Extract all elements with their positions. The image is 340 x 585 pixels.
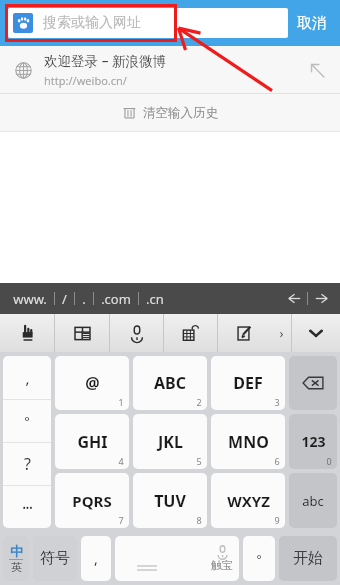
staticText: 5 — [196, 455, 202, 467]
staticText: 9 — [274, 514, 280, 526]
staticText: 搜索或输入网址 — [43, 14, 141, 32]
staticText: 3 — [274, 396, 280, 408]
button[interactable]: www. — [6, 283, 54, 314]
button[interactable]: 符号 — [33, 536, 77, 581]
staticText: ABC — [154, 372, 186, 394]
staticText: MNO — [228, 431, 269, 453]
staticText: http://weibo.cn/ — [44, 73, 127, 88]
button[interactable]: ° — [243, 536, 275, 581]
button[interactable]: Handwriting — [0, 314, 54, 352]
button[interactable]: Next — [308, 283, 334, 314]
button[interactable]: ? — [3, 443, 51, 485]
button[interactable]: JKL — [133, 414, 207, 469]
staticText: ° — [256, 551, 262, 567]
button[interactable]: MNO — [211, 414, 285, 469]
staticText: 4 — [118, 455, 124, 467]
button[interactable]: @ — [55, 356, 129, 410]
staticText: PQRS — [72, 491, 112, 511]
button[interactable]: 搜索或输入网址 — [8, 8, 288, 38]
button[interactable]: Backspace — [289, 356, 337, 410]
staticText: 8 — [196, 514, 202, 526]
staticText: ° — [24, 412, 30, 430]
button[interactable]: GHI — [55, 414, 129, 469]
button[interactable]: abc — [289, 473, 337, 528]
staticText: 中 — [10, 543, 23, 559]
button[interactable]: Voice input — [110, 314, 163, 352]
button[interactable]: WXYZ — [211, 473, 285, 528]
button[interactable]: Previous — [281, 283, 307, 314]
staticText: JKL — [158, 431, 183, 453]
button[interactable]: . — [75, 283, 93, 314]
staticText: GHI — [77, 431, 108, 453]
staticText: 取消 — [297, 14, 327, 33]
staticText: , — [94, 549, 98, 568]
staticText: 符号 — [40, 549, 70, 568]
button[interactable]: TUV — [133, 473, 207, 528]
staticText: abc — [302, 492, 324, 510]
button[interactable]: ° — [3, 400, 51, 442]
staticText: WXYZ — [227, 491, 270, 511]
button[interactable]: ABC — [133, 356, 207, 410]
staticText: . — [82, 290, 86, 308]
staticText: / — [62, 290, 67, 308]
staticText: 7 — [118, 514, 124, 526]
button[interactable]: Layout — [55, 314, 109, 352]
staticText: .com — [101, 290, 131, 308]
button[interactable]: Hide keyboard — [292, 314, 340, 352]
button[interactable]: , — [81, 536, 111, 581]
staticText: 0 — [326, 455, 332, 467]
button[interactable]: Notes — [218, 314, 271, 352]
button[interactable]: PQRS — [55, 473, 129, 528]
staticText: .cn — [146, 290, 164, 308]
staticText: 开始 — [293, 549, 323, 568]
button[interactable]: Keypad — [164, 314, 217, 352]
staticText: 欢迎登录 – 新浪微博 — [44, 52, 166, 70]
button[interactable]: 中 — [3, 536, 29, 581]
button[interactable]: , — [3, 356, 51, 399]
staticText: 1 — [118, 396, 124, 408]
button[interactable]: / — [55, 283, 74, 314]
button[interactable]: 开始 — [279, 536, 337, 581]
staticText: 英 — [11, 560, 22, 574]
staticText: ? — [24, 453, 31, 475]
button[interactable]: .cn — [139, 283, 171, 314]
button[interactable]: Fill in — [300, 53, 334, 87]
staticText: DEF — [233, 372, 263, 394]
staticText: 触宝 — [211, 558, 233, 572]
staticText: 123 — [301, 432, 326, 451]
staticText: , — [25, 368, 30, 388]
button[interactable]: .com — [94, 283, 138, 314]
staticText: ••• — [22, 501, 33, 513]
staticText: 2 — [196, 396, 202, 408]
staticText: › — [279, 324, 284, 342]
button[interactable]: 欢迎登录 – 新浪微博 — [0, 46, 340, 93]
staticText: www. — [13, 290, 47, 308]
button[interactable]: 123 — [289, 414, 337, 469]
staticText: @ — [85, 372, 100, 394]
button[interactable]: Space — [115, 536, 239, 581]
button[interactable]: 清空输入历史 — [0, 94, 340, 131]
button[interactable]: ••• — [3, 486, 51, 528]
button[interactable]: More — [271, 314, 291, 352]
staticText: 6 — [274, 455, 280, 467]
staticText: TUV — [154, 490, 186, 512]
staticText: 清空输入历史 — [143, 105, 218, 121]
button[interactable]: DEF — [211, 356, 285, 410]
button[interactable]: 取消 — [288, 0, 336, 46]
